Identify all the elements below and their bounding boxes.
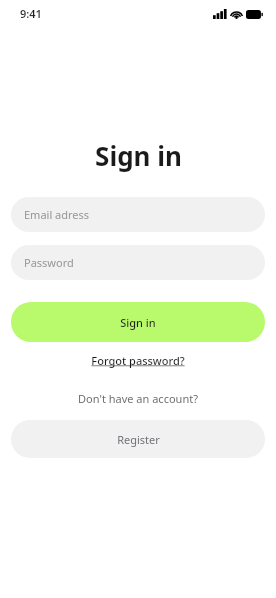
staticText: Register xyxy=(117,432,160,447)
staticText: Sign in xyxy=(120,315,156,330)
staticText: Forgot password? xyxy=(91,353,185,368)
staticText: Sign in xyxy=(95,138,182,173)
staticText: Password xyxy=(24,255,74,270)
button[interactable]: Email adress xyxy=(11,197,265,232)
button[interactable]: Sign in xyxy=(11,302,265,342)
button[interactable]: Password xyxy=(11,245,265,280)
staticText: Email adress xyxy=(24,207,90,222)
button[interactable]: Register xyxy=(11,420,265,458)
staticText: 9:41 xyxy=(20,6,42,21)
staticText: Don't have an account? xyxy=(78,391,198,406)
button[interactable]: Forgot password? xyxy=(87,351,189,370)
